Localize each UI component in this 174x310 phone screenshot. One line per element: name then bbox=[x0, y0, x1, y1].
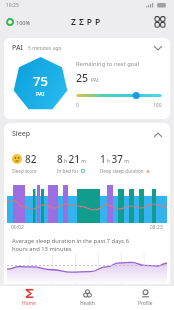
staticText: 100 bbox=[153, 102, 162, 109]
staticText: 25 bbox=[76, 71, 89, 85]
staticText: Sleep bbox=[12, 129, 31, 139]
staticText: 75 bbox=[33, 72, 48, 90]
staticText: PAI bbox=[12, 43, 23, 53]
staticText: 100% bbox=[16, 19, 31, 26]
staticText: 00:02 bbox=[11, 224, 24, 231]
button[interactable]: Profile bbox=[116, 286, 174, 310]
staticText: 8 h 21 m bbox=[57, 152, 86, 166]
staticText: PAI bbox=[36, 90, 45, 97]
staticText: Profile bbox=[138, 300, 153, 307]
staticText: 5 minutes ago bbox=[28, 45, 62, 52]
staticText: Health bbox=[80, 300, 95, 307]
staticText: Average sleep duration in the past 7 day… bbox=[12, 237, 144, 253]
button[interactable] bbox=[154, 16, 166, 28]
staticText: Home bbox=[22, 300, 36, 307]
staticText: Remaining to next goal bbox=[76, 60, 140, 68]
staticText: 1 h 37 m bbox=[100, 152, 129, 166]
staticText: In bed for bbox=[57, 168, 79, 174]
button[interactable]: 100% bbox=[6, 18, 31, 26]
staticText: 10:25 bbox=[6, 2, 19, 9]
staticText: ZΣPP bbox=[71, 16, 104, 28]
button[interactable]: Sleep bbox=[4, 123, 170, 284]
button[interactable]: PAI bbox=[4, 38, 170, 119]
button[interactable]: Health bbox=[58, 286, 116, 310]
staticText: 0 bbox=[76, 102, 79, 109]
staticText: Deep sleep duration bbox=[100, 168, 144, 174]
staticText: 08:23 bbox=[150, 224, 163, 231]
button[interactable]: Home bbox=[0, 286, 58, 310]
staticText: 82 bbox=[25, 152, 37, 166]
staticText: Sleep score bbox=[12, 168, 37, 174]
staticText: PAI bbox=[91, 77, 99, 84]
